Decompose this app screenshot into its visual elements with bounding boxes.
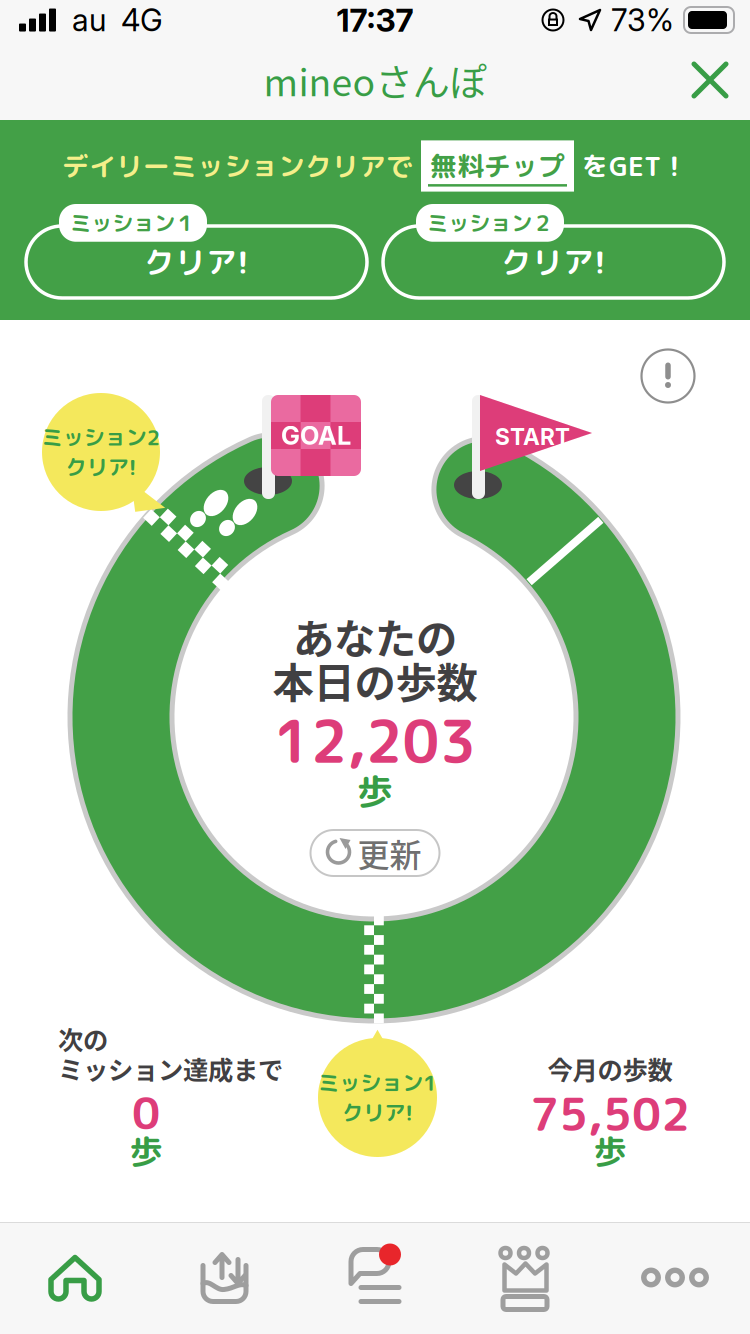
staticText: ミッション１	[70, 208, 196, 238]
button[interactable]: クリア!	[26, 204, 367, 298]
staticText: クリア!	[144, 241, 249, 283]
staticText: 4G	[121, 1, 163, 38]
staticText: 75,502	[530, 1082, 690, 1145]
staticText: デイリーミッションクリアで	[62, 147, 413, 185]
staticText: クリア!	[65, 452, 136, 482]
button[interactable]: Ranking	[450, 1223, 600, 1334]
staticText: 0	[132, 1082, 160, 1143]
staticText: 17:37	[336, 1, 413, 39]
button[interactable]: Close	[670, 40, 750, 120]
staticText: 本日の歩数	[272, 650, 477, 710]
staticText: 歩	[593, 1128, 626, 1174]
button[interactable]: Information	[637, 345, 699, 407]
staticText: あなたの	[293, 606, 457, 666]
staticText: 73%	[611, 1, 674, 38]
button[interactable]: 更新	[310, 830, 439, 876]
staticText: ミッション2	[41, 422, 160, 452]
staticText: 無料チップ	[430, 147, 565, 185]
button[interactable]: More	[600, 1223, 750, 1334]
staticText: mineoさんぽ	[263, 53, 486, 107]
staticText: クリア!	[501, 241, 606, 283]
staticText: 歩	[357, 766, 393, 816]
staticText: GOAL	[281, 420, 351, 451]
staticText: ミッション２	[427, 208, 553, 238]
staticText: クリア!	[342, 1097, 413, 1127]
staticText: 今月の歩数	[547, 1050, 672, 1087]
staticText: 12,203	[273, 701, 476, 781]
staticText: au	[72, 1, 106, 38]
button[interactable]: Home	[0, 1223, 150, 1334]
staticText: 更新	[357, 830, 421, 876]
staticText: ミッション達成まで	[58, 1050, 283, 1087]
staticText: ミッション1	[318, 1068, 437, 1097]
button[interactable]: クリア!	[383, 204, 724, 298]
button[interactable]: Messages	[300, 1223, 450, 1334]
staticText: 歩	[129, 1128, 162, 1174]
staticText: START	[495, 423, 570, 450]
staticText: をGET！	[582, 147, 688, 185]
staticText: 次の	[58, 1020, 108, 1057]
button[interactable]: Exchange	[150, 1223, 300, 1334]
